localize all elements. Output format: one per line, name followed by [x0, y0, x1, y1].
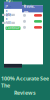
button[interactable]: Continue [5, 26, 20, 30]
staticText: Select Date [5, 6, 12, 16]
staticText: Reviews [14, 89, 36, 96]
staticText: 100% Accurate See The [1, 75, 49, 89]
staticText: Continue [6, 26, 20, 30]
staticText: Reviews [23, 4, 34, 14]
staticText: Select Time [5, 14, 12, 24]
staticText: App Title [5, 0, 13, 13]
